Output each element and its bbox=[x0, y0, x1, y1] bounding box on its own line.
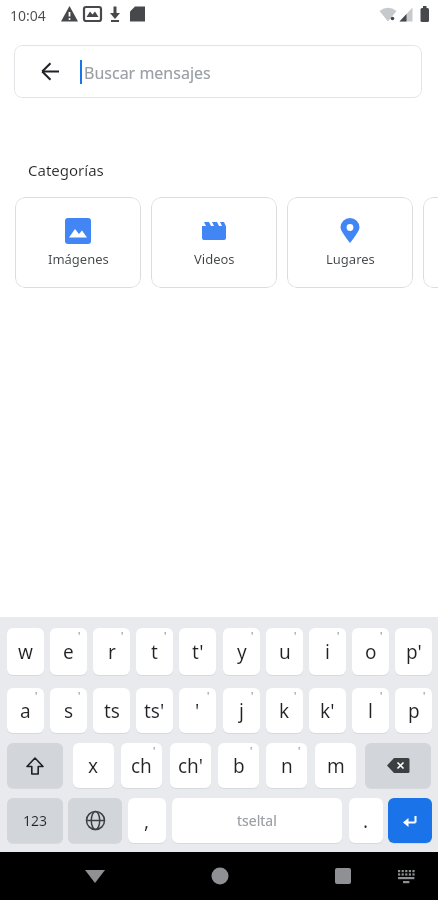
staticText: a bbox=[20, 698, 31, 724]
button[interactable]: Lugares bbox=[287, 197, 413, 288]
button[interactable]: p bbox=[395, 688, 432, 733]
staticText: ' bbox=[337, 629, 340, 643]
button[interactable]: ts bbox=[93, 688, 130, 733]
button[interactable]: , bbox=[128, 798, 166, 843]
staticText: ' bbox=[251, 689, 254, 703]
staticText: ' bbox=[294, 689, 297, 703]
button[interactable]: t' bbox=[179, 628, 216, 675]
button[interactable] bbox=[68, 798, 122, 843]
staticText: ' bbox=[250, 744, 253, 758]
staticText: ts' bbox=[144, 698, 165, 724]
staticText: tseltal bbox=[237, 811, 277, 830]
staticText: k bbox=[279, 698, 290, 724]
staticText: Videos bbox=[194, 250, 235, 268]
staticText: ' bbox=[207, 689, 210, 703]
staticText: ' bbox=[380, 689, 383, 703]
button[interactable]: l bbox=[352, 688, 389, 733]
button[interactable] bbox=[85, 866, 105, 886]
staticText: y bbox=[237, 639, 247, 665]
staticText: ' bbox=[35, 689, 38, 703]
staticText: , bbox=[144, 808, 150, 834]
button[interactable]: Imágenes bbox=[15, 197, 141, 288]
staticText: ' bbox=[164, 629, 167, 643]
button[interactable]: r bbox=[93, 628, 130, 675]
staticText: ' bbox=[78, 689, 81, 703]
staticText: Lugares bbox=[326, 250, 375, 268]
staticText: Imágenes bbox=[48, 250, 109, 268]
staticText: b bbox=[233, 753, 245, 779]
staticText: . bbox=[363, 808, 369, 834]
button[interactable]: 123 bbox=[7, 798, 63, 843]
staticText: p bbox=[408, 698, 420, 724]
staticText: t bbox=[151, 639, 158, 665]
button[interactable]: k' bbox=[309, 688, 346, 733]
staticText: ' bbox=[294, 629, 297, 643]
staticText: m bbox=[327, 753, 345, 779]
button[interactable]: k bbox=[266, 688, 303, 733]
button[interactable] bbox=[210, 866, 230, 886]
button[interactable]: y bbox=[223, 628, 260, 675]
button[interactable]: a bbox=[7, 688, 44, 733]
staticText: ts bbox=[104, 698, 120, 724]
staticText: ' bbox=[195, 698, 200, 724]
staticText: u bbox=[279, 639, 291, 665]
button[interactable]: p' bbox=[395, 628, 432, 675]
staticText: p' bbox=[406, 639, 422, 665]
staticText: r bbox=[108, 639, 116, 665]
button[interactable]: x bbox=[73, 743, 114, 788]
button[interactable]: Buscar mensajes bbox=[14, 45, 422, 98]
button[interactable]: t bbox=[136, 628, 173, 675]
staticText: k' bbox=[320, 698, 335, 724]
staticText: ' bbox=[298, 744, 301, 758]
button[interactable]: e bbox=[50, 628, 87, 675]
staticText: w bbox=[18, 639, 33, 665]
button[interactable]: j bbox=[223, 688, 260, 733]
button[interactable]: u bbox=[266, 628, 303, 675]
button[interactable]: i bbox=[309, 628, 346, 675]
button[interactable]: . bbox=[349, 798, 383, 843]
button[interactable]: o bbox=[352, 628, 389, 675]
staticText: ' bbox=[78, 629, 81, 643]
staticText: ' bbox=[423, 689, 426, 703]
button[interactable] bbox=[423, 197, 438, 288]
staticText: Buscar mensajes bbox=[84, 62, 211, 84]
staticText: Categorías bbox=[28, 160, 104, 180]
staticText: ch bbox=[131, 753, 152, 779]
button[interactable] bbox=[335, 866, 355, 886]
button[interactable]: Videos bbox=[151, 197, 277, 288]
staticText: n bbox=[281, 753, 293, 779]
button[interactable] bbox=[396, 866, 416, 886]
button[interactable]: w bbox=[7, 628, 44, 675]
staticText: x bbox=[88, 753, 99, 779]
button[interactable]: n bbox=[266, 743, 307, 788]
staticText: j bbox=[239, 698, 244, 724]
button[interactable]: ch' bbox=[170, 743, 211, 788]
staticText: o bbox=[365, 639, 377, 665]
staticText: ' bbox=[153, 744, 156, 758]
button[interactable]: ch bbox=[121, 743, 162, 788]
staticText: s bbox=[64, 698, 74, 724]
button[interactable] bbox=[388, 798, 432, 843]
staticText: 10:04 bbox=[10, 6, 46, 25]
staticText: t' bbox=[192, 639, 204, 665]
staticText: l bbox=[368, 698, 373, 724]
staticText: 123 bbox=[23, 811, 48, 830]
button[interactable]: b bbox=[218, 743, 259, 788]
staticText: i bbox=[325, 639, 330, 665]
button[interactable]: tseltal bbox=[172, 798, 342, 843]
button[interactable]: ' bbox=[179, 688, 216, 733]
button[interactable]: m bbox=[315, 743, 356, 788]
staticText: ch' bbox=[178, 753, 203, 779]
staticText: e bbox=[63, 639, 74, 665]
staticText: ' bbox=[380, 629, 383, 643]
button[interactable] bbox=[7, 743, 63, 788]
staticText: ' bbox=[251, 629, 254, 643]
button[interactable]: ts' bbox=[136, 688, 173, 733]
button[interactable]: s bbox=[50, 688, 87, 733]
staticText: ' bbox=[121, 629, 124, 643]
button[interactable] bbox=[365, 743, 431, 788]
